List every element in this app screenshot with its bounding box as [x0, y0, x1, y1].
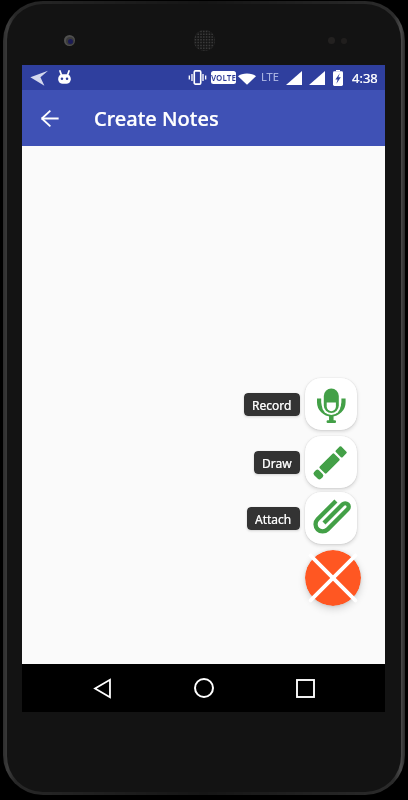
button[interactable]: Navigate up	[30, 98, 70, 138]
button[interactable]: Attach	[247, 492, 357, 544]
staticText: Draw	[262, 455, 292, 471]
button[interactable]: Record	[244, 378, 357, 430]
staticText: LTE	[261, 69, 279, 84]
button[interactable]: Back	[80, 666, 124, 710]
button[interactable]: Close actions menu	[305, 550, 361, 606]
button[interactable]: Draw	[254, 436, 357, 488]
staticText: Attach	[255, 511, 292, 527]
button[interactable]: Recent apps	[283, 666, 327, 710]
staticText: Record	[252, 397, 292, 413]
staticText: 4:38	[352, 69, 378, 87]
button[interactable]: Home	[182, 666, 226, 710]
staticText: VOLTE	[211, 72, 236, 83]
staticText: Create Notes	[94, 105, 219, 132]
